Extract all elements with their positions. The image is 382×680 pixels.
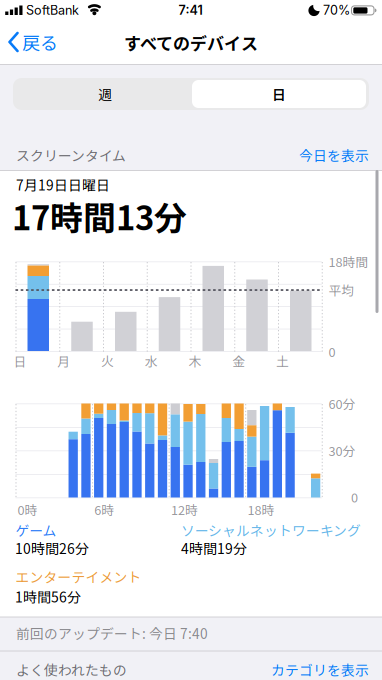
staticText: ゲーム (15, 520, 56, 540)
staticText: 70% (323, 3, 350, 18)
staticText: 今日を表示 (299, 145, 369, 165)
staticText: すべてのデバイス (124, 30, 258, 55)
staticText: 火 (101, 352, 114, 370)
staticText: 60分 (328, 394, 355, 413)
staticText: 戻る (22, 29, 58, 55)
staticText: ソーシャルネットワーキング (181, 520, 361, 540)
staticText: エンターテイメント (15, 566, 141, 586)
staticText: 30分 (328, 441, 355, 460)
staticText: SoftBank (26, 3, 79, 18)
staticText: 7:41 (178, 3, 202, 18)
button[interactable]: 週 (13, 78, 198, 110)
staticText: カテゴリを表示 (271, 659, 369, 679)
staticText: 平均 (328, 281, 354, 299)
staticText: 週 (98, 84, 112, 104)
button[interactable]: 日 (192, 80, 366, 108)
staticText: 18時 (247, 500, 274, 519)
staticText: 0 (328, 342, 335, 361)
staticText: 月 (57, 352, 70, 370)
staticText: 日 (13, 352, 26, 370)
staticText: 0 (351, 488, 358, 506)
staticText: 18時間 (328, 252, 368, 271)
button[interactable]: 今日を表示 (0, 144, 369, 166)
staticText: 17時間13分 (12, 192, 187, 240)
staticText: 水 (145, 352, 158, 370)
staticText: 前回のアップデート: 今日 7:40 (16, 623, 208, 643)
staticText: 6時 (94, 500, 114, 519)
staticText: 12時 (171, 500, 198, 519)
staticText: 日 (272, 84, 286, 104)
staticText: スクリーンタイム (16, 145, 126, 165)
staticText: 10時間26分 (15, 538, 89, 558)
button[interactable]: 戻る (8, 30, 58, 54)
staticText: 4時間19分 (181, 538, 247, 558)
staticText: 金 (232, 352, 245, 370)
staticText: よく使われたもの (16, 659, 127, 679)
staticText: 土 (276, 352, 289, 370)
button[interactable]: カテゴリを表示 (0, 658, 369, 680)
staticText: 木 (188, 352, 201, 370)
staticText: 7月19日日曜日 (16, 174, 110, 194)
staticText: 1時間56分 (15, 586, 81, 607)
staticText: 0時 (17, 500, 37, 519)
